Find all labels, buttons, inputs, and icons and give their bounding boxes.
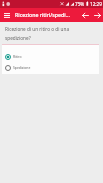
staticText: Ricezione di un ritiro o di una spedizio… (5, 26, 70, 41)
staticText: Ritiro (13, 54, 22, 59)
staticText: Spedizione (13, 65, 31, 70)
button[interactable]: Spedizione (2, 62, 99, 73)
button[interactable]: Forward (91, 8, 103, 22)
staticText: 75% (75, 1, 85, 7)
staticText: 12:29 (90, 1, 102, 7)
button[interactable]: Ritiro (2, 51, 99, 62)
button[interactable]: Back (79, 8, 91, 22)
button[interactable]: Menu (0, 8, 14, 22)
staticText: Ricezione ritiri/spedi... (15, 11, 70, 18)
